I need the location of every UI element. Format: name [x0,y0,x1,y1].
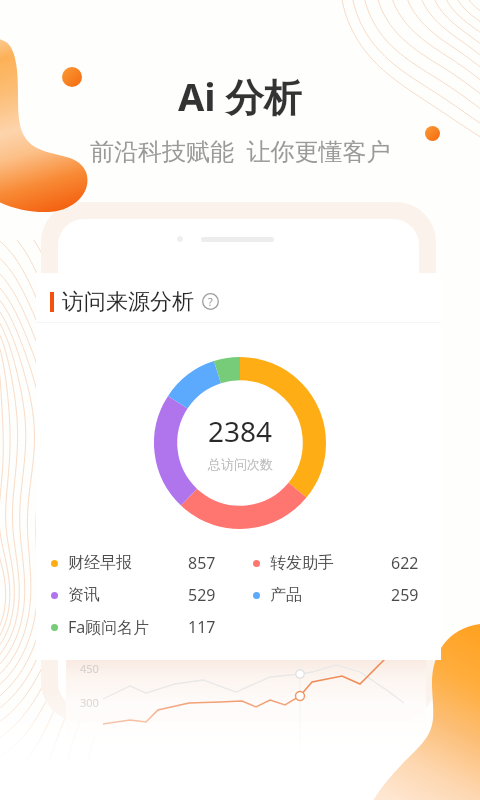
staticText: 2384 [208,412,273,450]
staticText: 产品 [270,585,302,605]
staticText: 前沿科技赋能 让你更懂客户 [90,134,391,167]
staticText: 622 [391,552,419,574]
button[interactable]: Fa顾问名片 [36,616,238,638]
staticText: Ai 分析 [178,70,302,122]
staticText: 300 [80,695,99,710]
staticText: 总访问次数 [208,456,273,472]
staticText: 资讯 [68,585,100,605]
button[interactable]: 转发助手 [238,552,441,574]
staticText: 450 [80,661,99,676]
staticText: 259 [391,584,419,606]
staticText: ? [208,294,213,309]
staticText: 857 [188,552,216,574]
button[interactable]: 帮助 [202,293,219,310]
button[interactable]: 资讯 [36,584,238,606]
staticText: 转发助手 [270,553,334,573]
staticText: Fa顾问名片 [68,616,150,638]
button[interactable]: 访问来源分析 [36,273,441,322]
button[interactable]: 财经早报 [36,552,238,574]
staticText: 117 [188,616,216,638]
staticText: 529 [188,584,216,606]
button[interactable]: 产品 [238,584,441,606]
staticText: 财经早报 [68,553,132,573]
staticText: 访问来源分析 [62,288,194,316]
